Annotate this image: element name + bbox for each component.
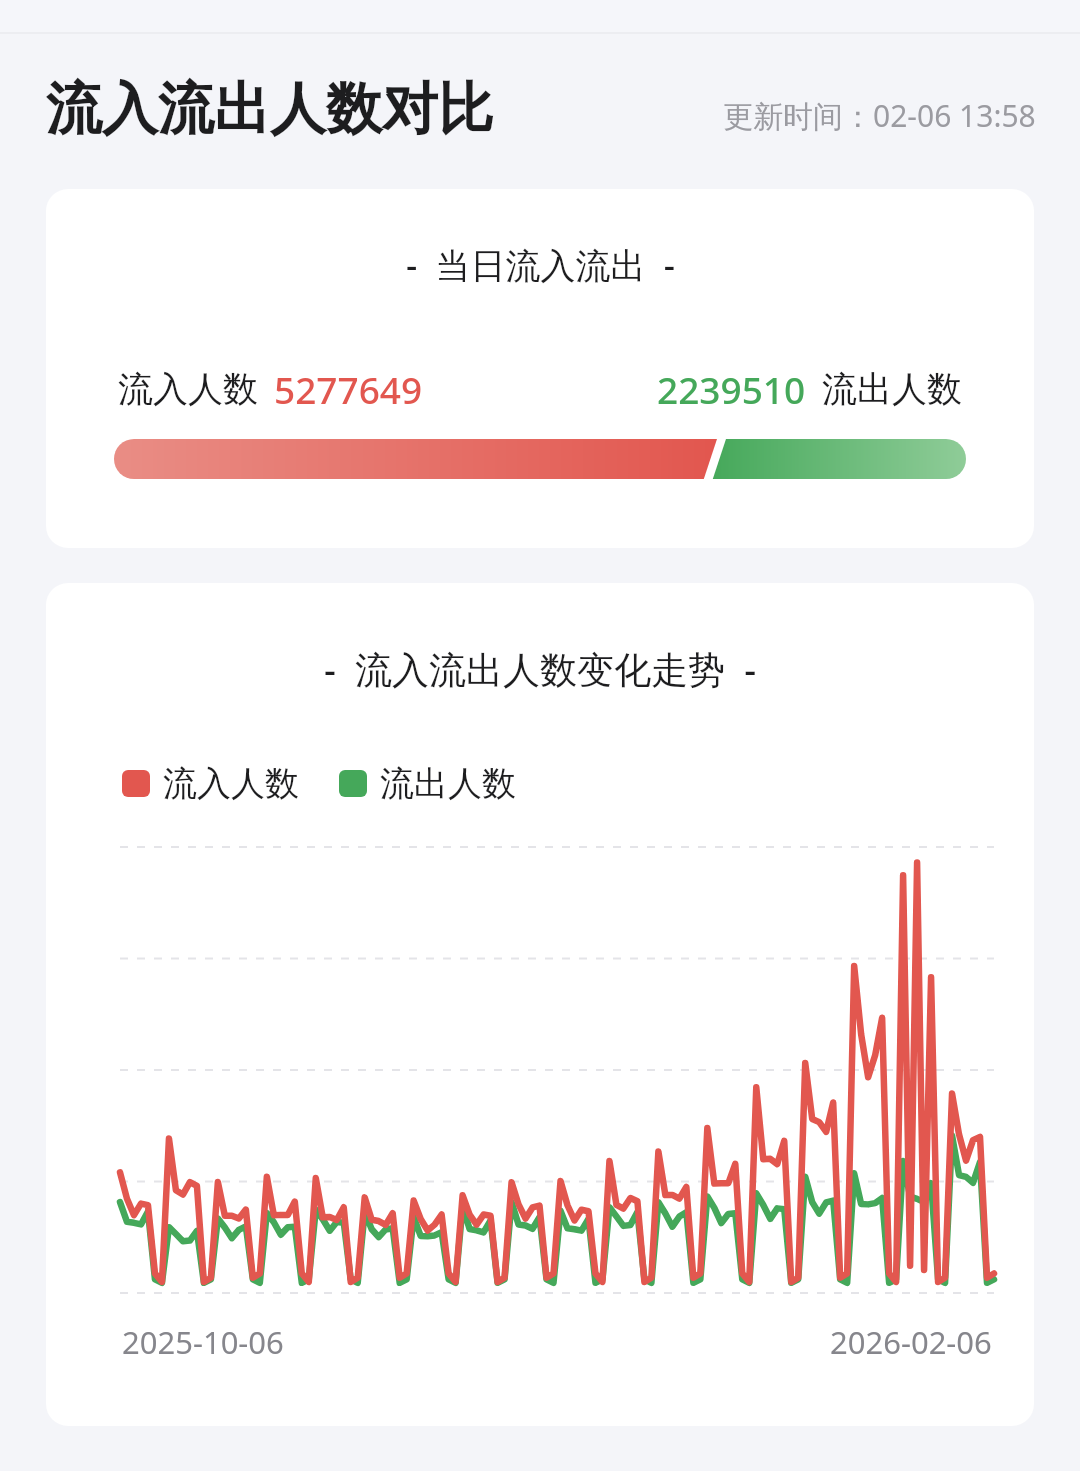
button[interactable]: - 当日流入流出 - [46,189,1034,548]
staticText: 5277649 [274,364,423,414]
button[interactable]: - 流入流出人数变化走势 - [46,583,1034,1426]
staticText: - 当日流入流出 - [406,241,675,289]
staticText: 2025-10-06 [122,1321,284,1363]
staticText: - 流入流出人数变化走势 - [324,643,757,694]
staticText: 流出人数 [822,367,962,411]
staticText: 流出人数 [380,762,516,805]
staticText: 流入人数 [118,367,258,411]
staticText: 流入流出人数对比 [46,74,494,145]
staticText: 流入人数 [163,762,299,805]
staticText: 2026-02-06 [830,1321,992,1363]
staticText: 2239510 [657,364,806,414]
staticText: 更新时间：02-06 13:58 [723,95,1036,136]
